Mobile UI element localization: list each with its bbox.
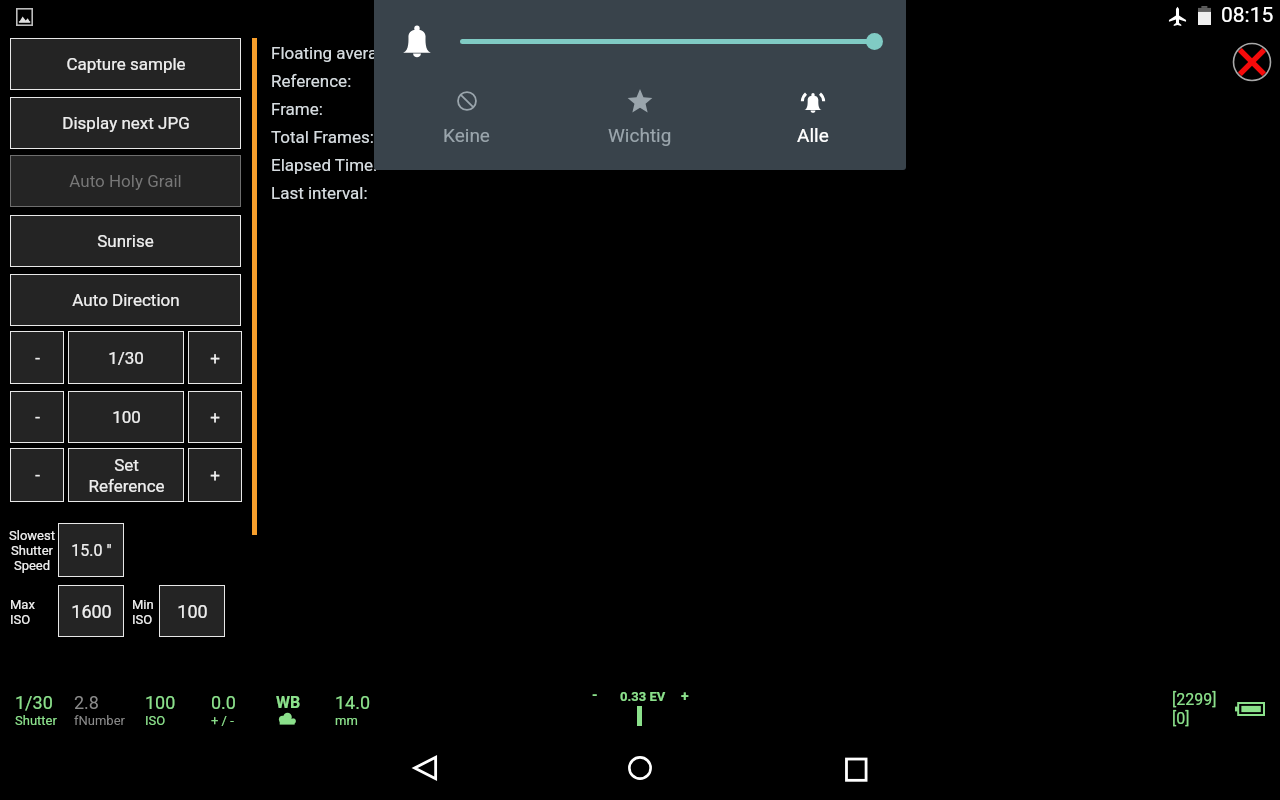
button[interactable]: Volume	[866, 33, 883, 50]
staticText: 1/30	[15, 692, 53, 713]
staticText: 100	[145, 692, 176, 713]
staticText: 08:15	[1221, 3, 1274, 28]
button[interactable]: -	[592, 687, 688, 703]
button[interactable]: 1600	[58, 585, 124, 637]
staticText: Shutter	[15, 713, 57, 728]
button[interactable]: +	[188, 331, 242, 384]
staticText: Wichtig	[608, 124, 672, 146]
staticText: + / -	[211, 713, 234, 728]
button[interactable]: +	[188, 391, 242, 443]
staticText: +	[210, 465, 220, 485]
button[interactable]: Stop capture	[1231, 41, 1272, 82]
staticText: Slowest Shutter Speed	[9, 528, 55, 573]
button[interactable]: -	[10, 331, 64, 384]
staticText: Reference:	[271, 71, 352, 91]
staticText: [0]	[1172, 709, 1190, 728]
button[interactable]: Alle	[753, 88, 873, 158]
button[interactable]: 1/30	[68, 331, 184, 384]
staticText: Auto Direction	[72, 290, 180, 310]
button[interactable]: Sunrise	[10, 215, 241, 267]
button[interactable]: Set Reference	[68, 448, 184, 502]
button[interactable]: -	[10, 448, 64, 502]
staticText: -	[35, 465, 40, 485]
staticText: Max ISO	[10, 597, 35, 627]
button[interactable]: +	[188, 448, 242, 502]
button[interactable]: Capture sample	[10, 38, 241, 90]
button[interactable]: 100	[68, 391, 184, 443]
staticText: 100	[112, 407, 141, 427]
staticText: 14.0	[335, 692, 371, 713]
button[interactable]: Wichtig	[580, 88, 700, 158]
staticText: 0.33 EV	[620, 689, 666, 704]
staticText: Keine	[443, 124, 490, 146]
staticText: Min ISO	[132, 597, 154, 627]
button[interactable]: -	[10, 391, 64, 443]
staticText: Set Reference	[88, 455, 165, 496]
staticText: WB	[276, 693, 301, 712]
button[interactable]: Home	[606, 736, 674, 800]
staticText: +	[210, 348, 220, 368]
button[interactable]: Auto Holy Grail	[10, 155, 241, 207]
staticText: Elapsed Time:	[271, 155, 378, 175]
staticText: 15.0 "	[71, 541, 112, 560]
staticText: ISO	[145, 713, 166, 728]
staticText: +	[210, 407, 220, 427]
staticText: Auto Holy Grail	[69, 171, 182, 191]
button[interactable]: Gallery	[6, 0, 42, 36]
staticText: 1600	[71, 601, 112, 622]
button[interactable]: Recents	[822, 736, 890, 800]
staticText: mm	[335, 713, 358, 728]
button[interactable]: 15.0 "	[58, 523, 124, 577]
staticText: Frame:	[271, 99, 323, 119]
staticText: 0.0	[211, 692, 236, 713]
staticText: Last interval:	[271, 183, 368, 203]
button[interactable]: Display next JPG	[10, 97, 241, 149]
button[interactable]: 100	[159, 585, 225, 637]
staticText: 1/30	[108, 348, 144, 368]
staticText: Alle	[797, 124, 829, 146]
staticText: Floating average:	[271, 43, 400, 63]
staticText: fNumber	[74, 713, 125, 728]
staticText: Sunrise	[97, 231, 154, 251]
staticText: 100	[177, 601, 208, 622]
button[interactable]: Keine	[406, 88, 526, 158]
staticText: [2299]	[1172, 690, 1217, 709]
staticText: +	[681, 688, 689, 704]
staticText: 2.8	[74, 692, 99, 713]
staticText: -	[35, 348, 40, 368]
staticText: -	[592, 687, 598, 703]
button[interactable]: Auto Direction	[10, 274, 241, 326]
staticText: -	[35, 407, 40, 427]
staticText: Display next JPG	[62, 113, 190, 133]
staticText: Capture sample	[66, 54, 186, 74]
button[interactable]: Back	[391, 736, 459, 800]
staticText: Total Frames:	[271, 127, 374, 147]
